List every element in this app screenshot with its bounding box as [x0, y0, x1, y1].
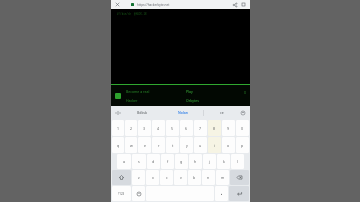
button[interactable]: Tabs: [240, 1, 247, 8]
button[interactable]: x: [146, 170, 159, 185]
button[interactable]: Period: [215, 186, 228, 201]
button[interactable]: Share: [231, 1, 238, 8]
staticText: g: [180, 159, 183, 164]
button[interactable]: b: [188, 170, 201, 185]
staticText: y: [186, 143, 188, 148]
button[interactable]: j: [203, 154, 216, 169]
staticText: 5: [171, 126, 174, 131]
staticText: n: [207, 175, 210, 180]
button[interactable]: z: [132, 170, 145, 185]
button[interactable]: t: [166, 137, 179, 153]
button[interactable]: r: [152, 137, 165, 153]
button[interactable]: p: [236, 137, 249, 153]
button[interactable]: 5: [166, 120, 179, 136]
staticText: Nolan: [178, 110, 188, 115]
staticText: ?123: [118, 192, 125, 196]
button[interactable]: d: [147, 154, 160, 169]
button[interactable]: Enter: [229, 186, 249, 201]
button[interactable]: 3: [138, 120, 151, 136]
button[interactable]: i: [208, 137, 221, 153]
button[interactable]: ce: [204, 106, 239, 119]
button[interactable]: o: [222, 137, 235, 153]
button[interactable]: s: [132, 154, 146, 169]
button[interactable]: 4: [152, 120, 165, 136]
staticText: r: [158, 143, 160, 148]
staticText: a: [123, 159, 125, 164]
button[interactable]: m: [216, 170, 229, 185]
button[interactable]: a: [117, 154, 131, 169]
button[interactable]: Bdksb: [122, 106, 162, 119]
staticText: 2: [130, 126, 133, 131]
button[interactable]: 6: [180, 120, 193, 136]
button[interactable]: 1: [112, 120, 124, 136]
button[interactable]: 0: [236, 120, 249, 136]
staticText: v: [180, 175, 182, 180]
staticText: i: [214, 143, 215, 148]
button[interactable]: v: [174, 170, 187, 185]
staticText: https://hackerbyte.net: [137, 3, 231, 7]
staticText: o: [227, 143, 230, 148]
button[interactable]: w: [125, 137, 137, 153]
button[interactable]: l: [231, 154, 244, 169]
button[interactable]: ?123: [112, 186, 131, 201]
button[interactable]: k: [217, 154, 230, 169]
staticText: Orbytes: [186, 98, 199, 103]
staticText: z: [138, 175, 140, 180]
button[interactable]: 8: [208, 120, 221, 136]
button[interactable]: 7: [194, 120, 207, 136]
button[interactable]: Voice input: [114, 109, 122, 117]
staticText: e: [144, 143, 146, 148]
staticText: Play: [186, 89, 193, 94]
button[interactable]: 2: [125, 120, 137, 136]
staticText: u: [199, 143, 202, 148]
staticText: 9: [227, 126, 230, 131]
button[interactable]: h: [189, 154, 202, 169]
staticText: Hacker: [126, 98, 138, 103]
button[interactable]: e: [138, 137, 151, 153]
staticText: s: [138, 159, 140, 164]
staticText: t: [172, 143, 174, 148]
button[interactable]: Keyboard options: [239, 109, 247, 117]
staticText: #!/bin/sh @HACK-18: [117, 12, 147, 16]
staticText: h: [194, 159, 197, 164]
button[interactable]: Close: [114, 1, 121, 8]
staticText: Bdksb: [137, 110, 148, 115]
staticText: q: [117, 143, 120, 148]
button[interactable]: c: [160, 170, 173, 185]
staticText: f: [167, 159, 169, 164]
staticText: 3: [143, 126, 146, 131]
staticText: 7: [199, 126, 202, 131]
staticText: l: [237, 159, 238, 164]
staticText: x: [152, 175, 154, 180]
staticText: k: [223, 159, 225, 164]
button[interactable]: u: [194, 137, 207, 153]
staticText: p: [241, 143, 244, 148]
button[interactable]: Nolan: [162, 106, 203, 119]
button[interactable]: Shift: [112, 170, 131, 185]
staticText: ce: [220, 110, 224, 115]
staticText: 6: [185, 126, 188, 131]
staticText: 8: [213, 126, 216, 131]
staticText: 4: [157, 126, 160, 131]
button[interactable]: n: [202, 170, 215, 185]
button[interactable]: f: [161, 154, 174, 169]
button[interactable]: q: [112, 137, 124, 153]
staticText: X: [244, 90, 246, 95]
button[interactable]: Close ad: [239, 85, 250, 106]
staticText: m: [221, 175, 225, 180]
staticText: c: [166, 175, 168, 180]
staticText: d: [152, 159, 155, 164]
button[interactable]: Emoji: [132, 186, 145, 201]
staticText: b: [193, 175, 196, 180]
staticText: w: [130, 143, 133, 148]
staticText: Become a real: [126, 89, 150, 94]
staticText: j: [209, 159, 210, 164]
button[interactable]: Become a real: [111, 85, 250, 106]
button[interactable]: g: [175, 154, 188, 169]
staticText: 0: [241, 126, 244, 131]
button[interactable]: y: [180, 137, 193, 153]
staticText: 1: [117, 126, 120, 131]
button[interactable]: Backspace: [230, 170, 249, 185]
button[interactable]: 9: [222, 120, 235, 136]
